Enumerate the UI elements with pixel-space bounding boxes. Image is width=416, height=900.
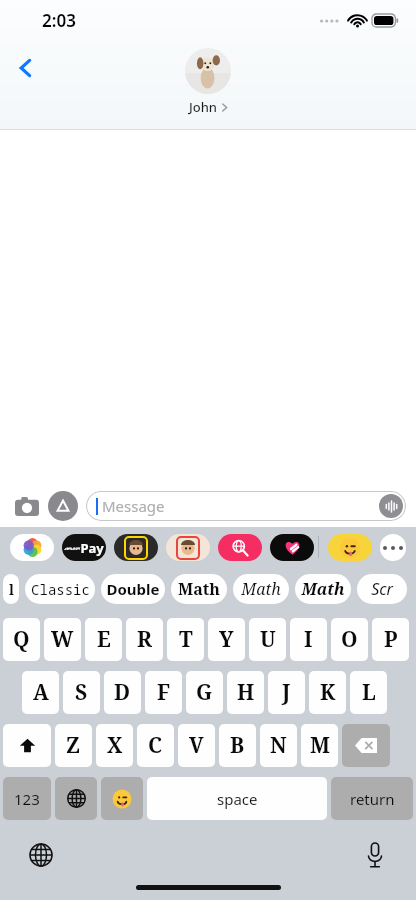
staticText: B <box>230 731 245 760</box>
staticText: Z <box>66 731 81 760</box>
button[interactable]: X <box>96 724 133 767</box>
button[interactable] <box>10 534 54 561</box>
staticText: C <box>148 731 163 760</box>
button[interactable] <box>114 534 158 561</box>
staticText: Pay <box>64 539 104 557</box>
button[interactable]: K <box>309 671 346 714</box>
button[interactable]: Scr <box>357 574 407 604</box>
staticText: Q <box>13 625 30 654</box>
button[interactable] <box>166 534 210 561</box>
staticText: A <box>33 678 49 707</box>
staticText: return <box>350 789 395 809</box>
staticText: Math <box>301 578 345 600</box>
button[interactable]: Pay <box>62 534 106 561</box>
button[interactable]: Camera <box>10 489 44 523</box>
staticText: Y <box>219 625 234 654</box>
staticText: T <box>179 625 193 654</box>
staticText: V <box>189 731 204 760</box>
staticText: Double <box>106 579 160 599</box>
button[interactable]: App Store <box>48 491 78 521</box>
button[interactable]: P <box>372 618 409 661</box>
button[interactable]: L <box>350 671 387 714</box>
staticText: P <box>384 625 398 654</box>
staticText: N <box>270 731 287 760</box>
staticText: Scr <box>371 578 393 600</box>
staticText: S <box>75 678 88 707</box>
button[interactable]: Audio message <box>379 494 403 518</box>
button[interactable]: U <box>249 618 286 661</box>
button[interactable]: Message <box>86 491 406 521</box>
staticText: Classic <box>31 580 90 599</box>
button[interactable]: space <box>147 777 327 820</box>
staticText: K <box>320 678 336 707</box>
button[interactable]: Q <box>3 618 40 661</box>
button[interactable]: Delete <box>342 724 390 767</box>
button[interactable]: A <box>22 671 59 714</box>
button[interactable]: H <box>227 671 264 714</box>
button[interactable]: John <box>185 48 231 116</box>
button[interactable]: Dictate <box>358 838 392 872</box>
staticText: Math <box>241 578 281 600</box>
staticText: E <box>97 625 111 654</box>
button[interactable]: I <box>290 618 327 661</box>
button[interactable]: M <box>301 724 338 767</box>
staticText: W <box>51 625 74 654</box>
button[interactable] <box>328 534 372 561</box>
staticText: John <box>189 98 218 116</box>
button[interactable]: F <box>145 671 182 714</box>
button[interactable]: Math <box>171 574 227 604</box>
staticText: O <box>341 625 358 654</box>
staticText: 2:03 <box>42 9 76 32</box>
button[interactable] <box>380 534 406 561</box>
button[interactable]: J <box>268 671 305 714</box>
staticText: X <box>107 731 123 760</box>
button[interactable]: Change keyboard <box>24 838 58 872</box>
button[interactable]: Math <box>295 574 351 604</box>
button[interactable]: Z <box>55 724 92 767</box>
button[interactable]: Emoji <box>101 777 143 820</box>
staticText: U <box>260 625 276 654</box>
button[interactable] <box>270 534 314 561</box>
staticText: F <box>157 678 171 707</box>
button[interactable]: Shift <box>3 724 51 767</box>
button[interactable]: S <box>63 671 100 714</box>
staticText: L <box>362 678 376 707</box>
staticText: l <box>9 580 14 599</box>
button[interactable]: Math <box>233 574 289 604</box>
button[interactable]: C <box>137 724 174 767</box>
button[interactable]: O <box>331 618 368 661</box>
staticText: space <box>217 789 258 809</box>
button[interactable]: B <box>219 724 256 767</box>
staticText: Math <box>178 578 220 600</box>
button[interactable]: Classic <box>25 574 95 604</box>
button[interactable]: Double <box>101 574 165 604</box>
button[interactable]: l <box>3 574 19 604</box>
button[interactable] <box>218 534 262 561</box>
button[interactable]: R <box>126 618 163 661</box>
button[interactable]: Next keyboard <box>55 777 97 820</box>
button[interactable]: W <box>44 618 81 661</box>
button[interactable]: V <box>178 724 215 767</box>
button[interactable]: return <box>331 777 413 820</box>
button[interactable]: Y <box>208 618 245 661</box>
button[interactable]: D <box>104 671 141 714</box>
staticText: M <box>310 731 330 760</box>
button[interactable]: N <box>260 724 297 767</box>
staticText: J <box>282 678 291 707</box>
staticText: D <box>114 678 131 707</box>
button[interactable]: G <box>186 671 223 714</box>
staticText: R <box>137 625 152 654</box>
staticText: Message <box>102 496 165 516</box>
staticText: H <box>237 678 255 707</box>
button[interactable]: Back <box>6 48 46 88</box>
staticText: I <box>304 625 313 654</box>
button[interactable]: T <box>167 618 204 661</box>
button[interactable]: E <box>85 618 122 661</box>
staticText: 123 <box>14 789 40 809</box>
staticText: G <box>196 678 213 707</box>
button[interactable]: 123 <box>3 777 51 820</box>
